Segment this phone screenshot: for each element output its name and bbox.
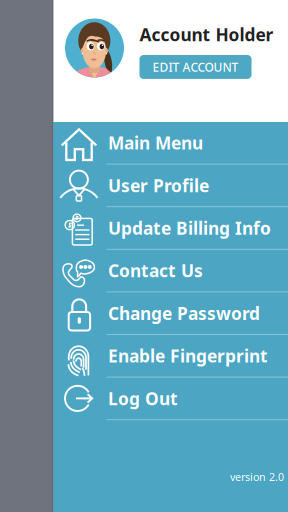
staticText: User Profile <box>108 174 209 197</box>
staticText: EDIT ACCOUNT <box>152 59 238 75</box>
button[interactable]: Main Menu <box>53 122 288 165</box>
staticText: Log Out <box>108 387 178 410</box>
staticText: Change Password <box>108 302 260 325</box>
staticText: Contact Us <box>108 259 203 282</box>
button[interactable]: Enable Fingerprint <box>53 335 288 378</box>
staticText: Main Menu <box>108 131 203 154</box>
button[interactable]: EDIT ACCOUNT <box>139 55 251 79</box>
button[interactable]: User Profile <box>53 165 288 207</box>
staticText: Enable Fingerprint <box>108 344 268 367</box>
button[interactable]: Update Billing Info <box>53 207 288 250</box>
staticText: version 2.0 <box>230 470 284 484</box>
button[interactable]: Contact Us <box>53 250 288 292</box>
button[interactable]: Change Password <box>53 292 288 335</box>
staticText: Update Billing Info <box>108 216 271 239</box>
button[interactable]: Log Out <box>53 378 288 420</box>
staticText: Account Holder <box>139 23 273 46</box>
